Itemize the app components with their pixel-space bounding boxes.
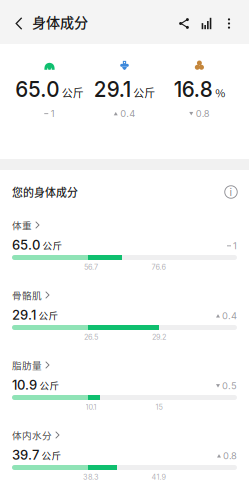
button[interactable]: More options — [220, 0, 242, 44]
staticText: 1 — [233, 240, 237, 251]
staticText: 29.2 — [152, 333, 166, 341]
staticText: 0.5 — [222, 380, 237, 391]
button[interactable]: 脂肪量 — [0, 354, 249, 424]
staticText: 38.3 — [83, 473, 99, 481]
staticText: 身体成分 — [32, 11, 88, 32]
staticText: % — [215, 85, 225, 100]
staticText: 10.9 — [12, 377, 37, 393]
staticText: 29.1 — [94, 77, 131, 102]
staticText: 0.4 — [120, 108, 135, 119]
staticText: 10.1 — [85, 403, 96, 411]
staticText: 公斤 — [42, 238, 62, 252]
button[interactable]: Trends — [197, 0, 220, 44]
button[interactable]: Share — [175, 0, 197, 44]
button[interactable]: Back — [0, 0, 32, 44]
staticText: 体重 — [12, 218, 32, 232]
staticText: 65.0 — [12, 237, 40, 253]
staticText: 39.7 — [12, 447, 39, 463]
staticText: 29.1 — [12, 307, 36, 323]
staticText: 65.0 — [15, 77, 59, 102]
staticText: 骨骼肌 — [12, 288, 42, 302]
staticText: 41.9 — [151, 473, 166, 481]
staticText: 0.4 — [222, 310, 237, 321]
staticText: 公斤 — [38, 308, 58, 322]
staticText: 公斤 — [39, 378, 59, 392]
staticText: 您的身体成分 — [12, 184, 78, 200]
staticText: 16.8 — [174, 77, 213, 102]
staticText: 15 — [155, 403, 162, 411]
staticText: 26.5 — [84, 333, 98, 341]
staticText: 56.7 — [84, 263, 98, 271]
staticText: 体内水分 — [12, 428, 52, 442]
button[interactable]: Information — [220, 179, 242, 205]
staticText: 1 — [51, 108, 55, 119]
staticText: 公斤 — [62, 85, 84, 100]
button[interactable]: 体内水分 — [0, 424, 249, 494]
staticText: 76.6 — [151, 263, 166, 271]
button[interactable]: 骨骼肌 — [0, 284, 249, 354]
staticText: 公斤 — [133, 85, 155, 100]
staticText: 0.8 — [196, 108, 210, 119]
button[interactable]: 体重 — [0, 214, 249, 284]
staticText: 0.8 — [223, 450, 237, 461]
staticText: 脂肪量 — [12, 358, 42, 372]
staticText: i — [229, 186, 232, 199]
staticText: 公斤 — [41, 448, 61, 462]
